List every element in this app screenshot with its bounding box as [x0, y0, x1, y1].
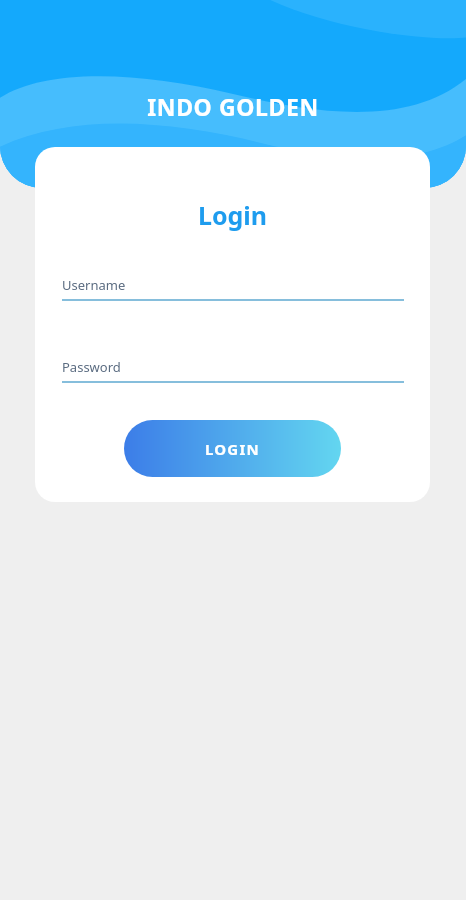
button[interactable]: LOGIN: [124, 420, 341, 477]
staticText: Login: [35, 198, 430, 232]
staticText: INDO GOLDEN: [0, 91, 466, 122]
staticText: LOGIN: [205, 439, 260, 459]
staticText: Password: [62, 358, 121, 376]
staticText: Username: [62, 276, 126, 294]
button[interactable]: Password: [62, 358, 404, 383]
button[interactable]: Username: [62, 276, 404, 301]
